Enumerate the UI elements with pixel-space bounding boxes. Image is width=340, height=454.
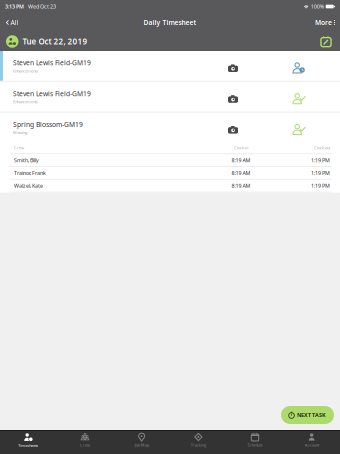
button[interactable]: Tracking — [170, 431, 227, 454]
button[interactable]: All — [0, 13, 23, 31]
staticText: Job Map — [135, 442, 149, 448]
staticText: More — [315, 18, 332, 27]
staticText: Schedule — [247, 442, 262, 448]
staticText: 1:19 PM — [311, 157, 330, 164]
staticText: 1:19 PM — [311, 169, 330, 176]
button[interactable]: Spring Blossom-GM19 — [0, 113, 340, 142]
staticText: 3:13 PM — [5, 3, 24, 10]
staticText: 1:19 PM — [311, 182, 330, 189]
button[interactable]: Crew — [57, 431, 113, 454]
staticText: Spring Blossom-GM19 — [13, 120, 83, 129]
button[interactable]: Edit timesheet — [318, 33, 334, 49]
staticText: Enhancements — [13, 68, 38, 73]
button[interactable]: Steven Lewis Field-GM19 — [0, 82, 340, 112]
staticText: Tracking — [191, 442, 206, 448]
staticText: Crew — [80, 442, 90, 448]
staticText: 8:19 AM — [231, 157, 250, 164]
staticText: Steven Lewis Field-GM19 — [13, 89, 91, 98]
staticText: 100% — [311, 3, 324, 10]
staticText: Clock-in — [234, 145, 248, 150]
button[interactable]: Job Map — [113, 431, 170, 454]
staticText: Wed Oct 23 — [28, 3, 56, 10]
button[interactable]: Schedule — [227, 431, 283, 454]
staticText: 8:19 AM — [231, 169, 250, 176]
staticText: Smith, Billy — [14, 157, 39, 164]
staticText: Steven Lewis Field-GM19 — [13, 58, 91, 67]
button[interactable]: NEXT TASK — [281, 406, 334, 424]
staticText: Clock-out — [314, 145, 330, 150]
staticText: 8:19 AM — [231, 182, 250, 189]
button[interactable]: Steven Lewis Field-GM19 — [0, 51, 340, 81]
button[interactable]: Account — [283, 431, 340, 454]
staticText: Account — [305, 442, 319, 448]
staticText: Mowing — [13, 130, 27, 135]
staticText: Crew — [14, 145, 24, 150]
button[interactable]: Timesheets — [0, 431, 57, 454]
staticText: Timesheets — [18, 443, 38, 448]
staticText: NEXT TASK — [297, 411, 326, 419]
staticText: All — [10, 18, 18, 27]
staticText: Tue Oct 22, 2019 — [22, 36, 87, 47]
staticText: Enhancements — [13, 99, 38, 104]
staticText: Walzel, Kate — [14, 182, 43, 189]
button[interactable]: More — [310, 13, 340, 31]
staticText: Daily Timesheet — [143, 18, 196, 27]
staticText: Trainor, Frank — [14, 169, 46, 176]
